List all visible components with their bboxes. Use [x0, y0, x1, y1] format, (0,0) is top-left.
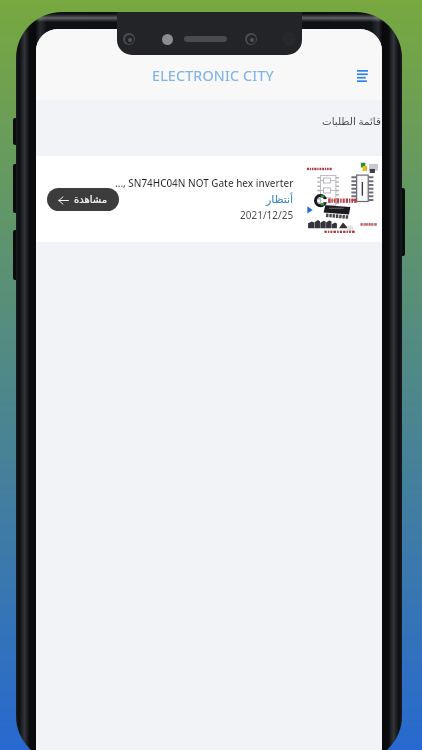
staticText: أنتظار	[266, 193, 294, 206]
staticText: مشاهدة	[74, 194, 108, 206]
staticText: قائمة الطلبات	[322, 114, 381, 128]
staticText: 2021/12/25	[240, 208, 294, 222]
staticText: ELECTRONIC CITY	[152, 66, 274, 85]
button[interactable]: مشاهدة	[47, 188, 119, 211]
button[interactable]: مشاهدة	[36, 156, 382, 242]
staticText: ..., SN74HC04N NOT Gate hex inverter	[115, 176, 294, 189]
button[interactable]: Menu	[349, 62, 376, 89]
